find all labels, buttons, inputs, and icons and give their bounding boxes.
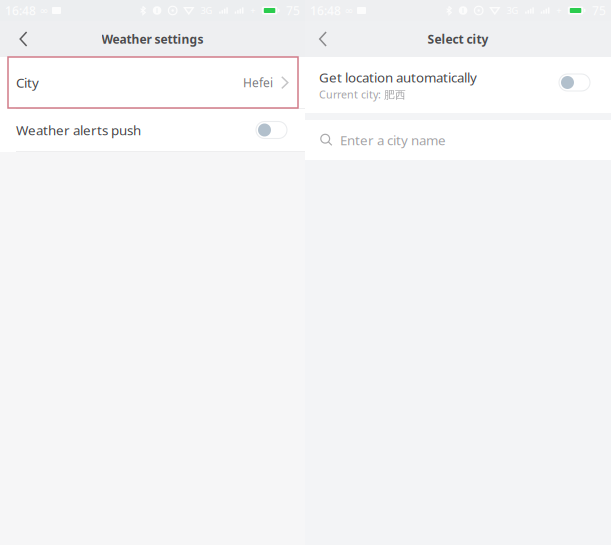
staticText: 16:48 [310, 2, 341, 18]
staticText: Weather alerts push [16, 121, 141, 139]
staticText: 75 [286, 2, 300, 18]
button[interactable]: Enter a city name [305, 120, 611, 160]
staticText: Hefei [243, 74, 273, 90]
button[interactable]: Back [0, 21, 49, 57]
staticText: City [16, 74, 39, 91]
button[interactable]: Back [305, 21, 348, 57]
button[interactable]: City [0, 57, 305, 108]
staticText: Select city [427, 31, 488, 47]
staticText: 3G [200, 4, 212, 17]
staticText: + [250, 4, 255, 17]
staticText: 16:48 [5, 2, 36, 18]
staticText: ∞ [39, 4, 48, 16]
staticText: Weather settings [101, 31, 203, 47]
staticText: 3G [506, 4, 518, 17]
staticText: Get location automatically [319, 68, 477, 86]
staticText: Current city: 肥西 [319, 87, 406, 101]
button[interactable]: Get location automatically [305, 57, 611, 113]
staticText: 75 [592, 2, 606, 18]
staticText: Enter a city name [340, 131, 446, 149]
button[interactable]: Weather alerts push [0, 109, 305, 151]
